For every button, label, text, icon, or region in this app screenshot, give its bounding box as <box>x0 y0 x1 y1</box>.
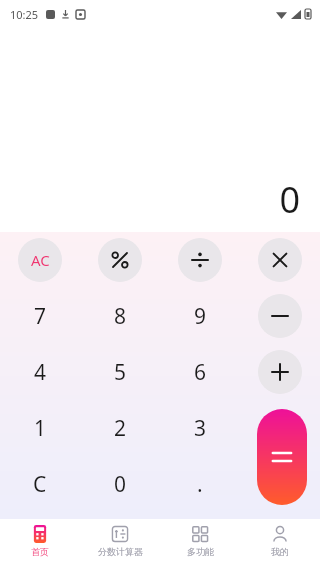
button[interactable]: 分数计算器 <box>80 519 160 568</box>
button[interactable]: 0 <box>80 456 160 512</box>
button[interactable]: 8 <box>80 288 160 344</box>
button[interactable]: Plus <box>258 350 302 394</box>
staticText: 0 <box>114 470 127 499</box>
button[interactable]: Divide <box>178 238 222 282</box>
button[interactable]: C <box>0 456 80 512</box>
button[interactable]: 7 <box>0 288 80 344</box>
staticText: 1 <box>34 414 47 443</box>
staticText: 首页 <box>31 546 49 557</box>
staticText: 多功能 <box>187 546 214 557</box>
button[interactable]: Equals <box>257 409 307 505</box>
button[interactable]: 我的 <box>240 519 320 568</box>
staticText: 分数计算器 <box>98 546 143 557</box>
button[interactable]: 3 <box>160 400 240 456</box>
staticText: 4 <box>34 358 47 387</box>
staticText: 2 <box>114 414 127 443</box>
staticText: . <box>197 470 203 499</box>
staticText: 0 <box>279 175 300 224</box>
button[interactable]: 4 <box>0 344 80 400</box>
staticText: 7 <box>34 302 47 331</box>
button[interactable]: 首页 <box>0 519 80 568</box>
button[interactable]: Multiply <box>258 238 302 282</box>
button[interactable]: 9 <box>160 288 240 344</box>
staticText: 5 <box>114 358 127 387</box>
button[interactable]: Percent <box>98 238 142 282</box>
button[interactable]: 2 <box>80 400 160 456</box>
staticText: 6 <box>194 358 207 387</box>
button[interactable]: AC <box>18 238 62 282</box>
button[interactable]: 多功能 <box>160 519 240 568</box>
staticText: 10:25 <box>10 7 39 22</box>
staticText: 9 <box>194 302 207 331</box>
staticText: 8 <box>114 302 127 331</box>
button[interactable]: 5 <box>80 344 160 400</box>
button[interactable]: 6 <box>160 344 240 400</box>
staticText: 我的 <box>271 546 289 557</box>
button[interactable]: 1 <box>0 400 80 456</box>
staticText: C <box>33 470 47 499</box>
staticText: 3 <box>194 414 207 443</box>
button[interactable]: . <box>160 456 240 512</box>
button[interactable]: Minus <box>258 294 302 338</box>
staticText: AC <box>31 250 50 270</box>
